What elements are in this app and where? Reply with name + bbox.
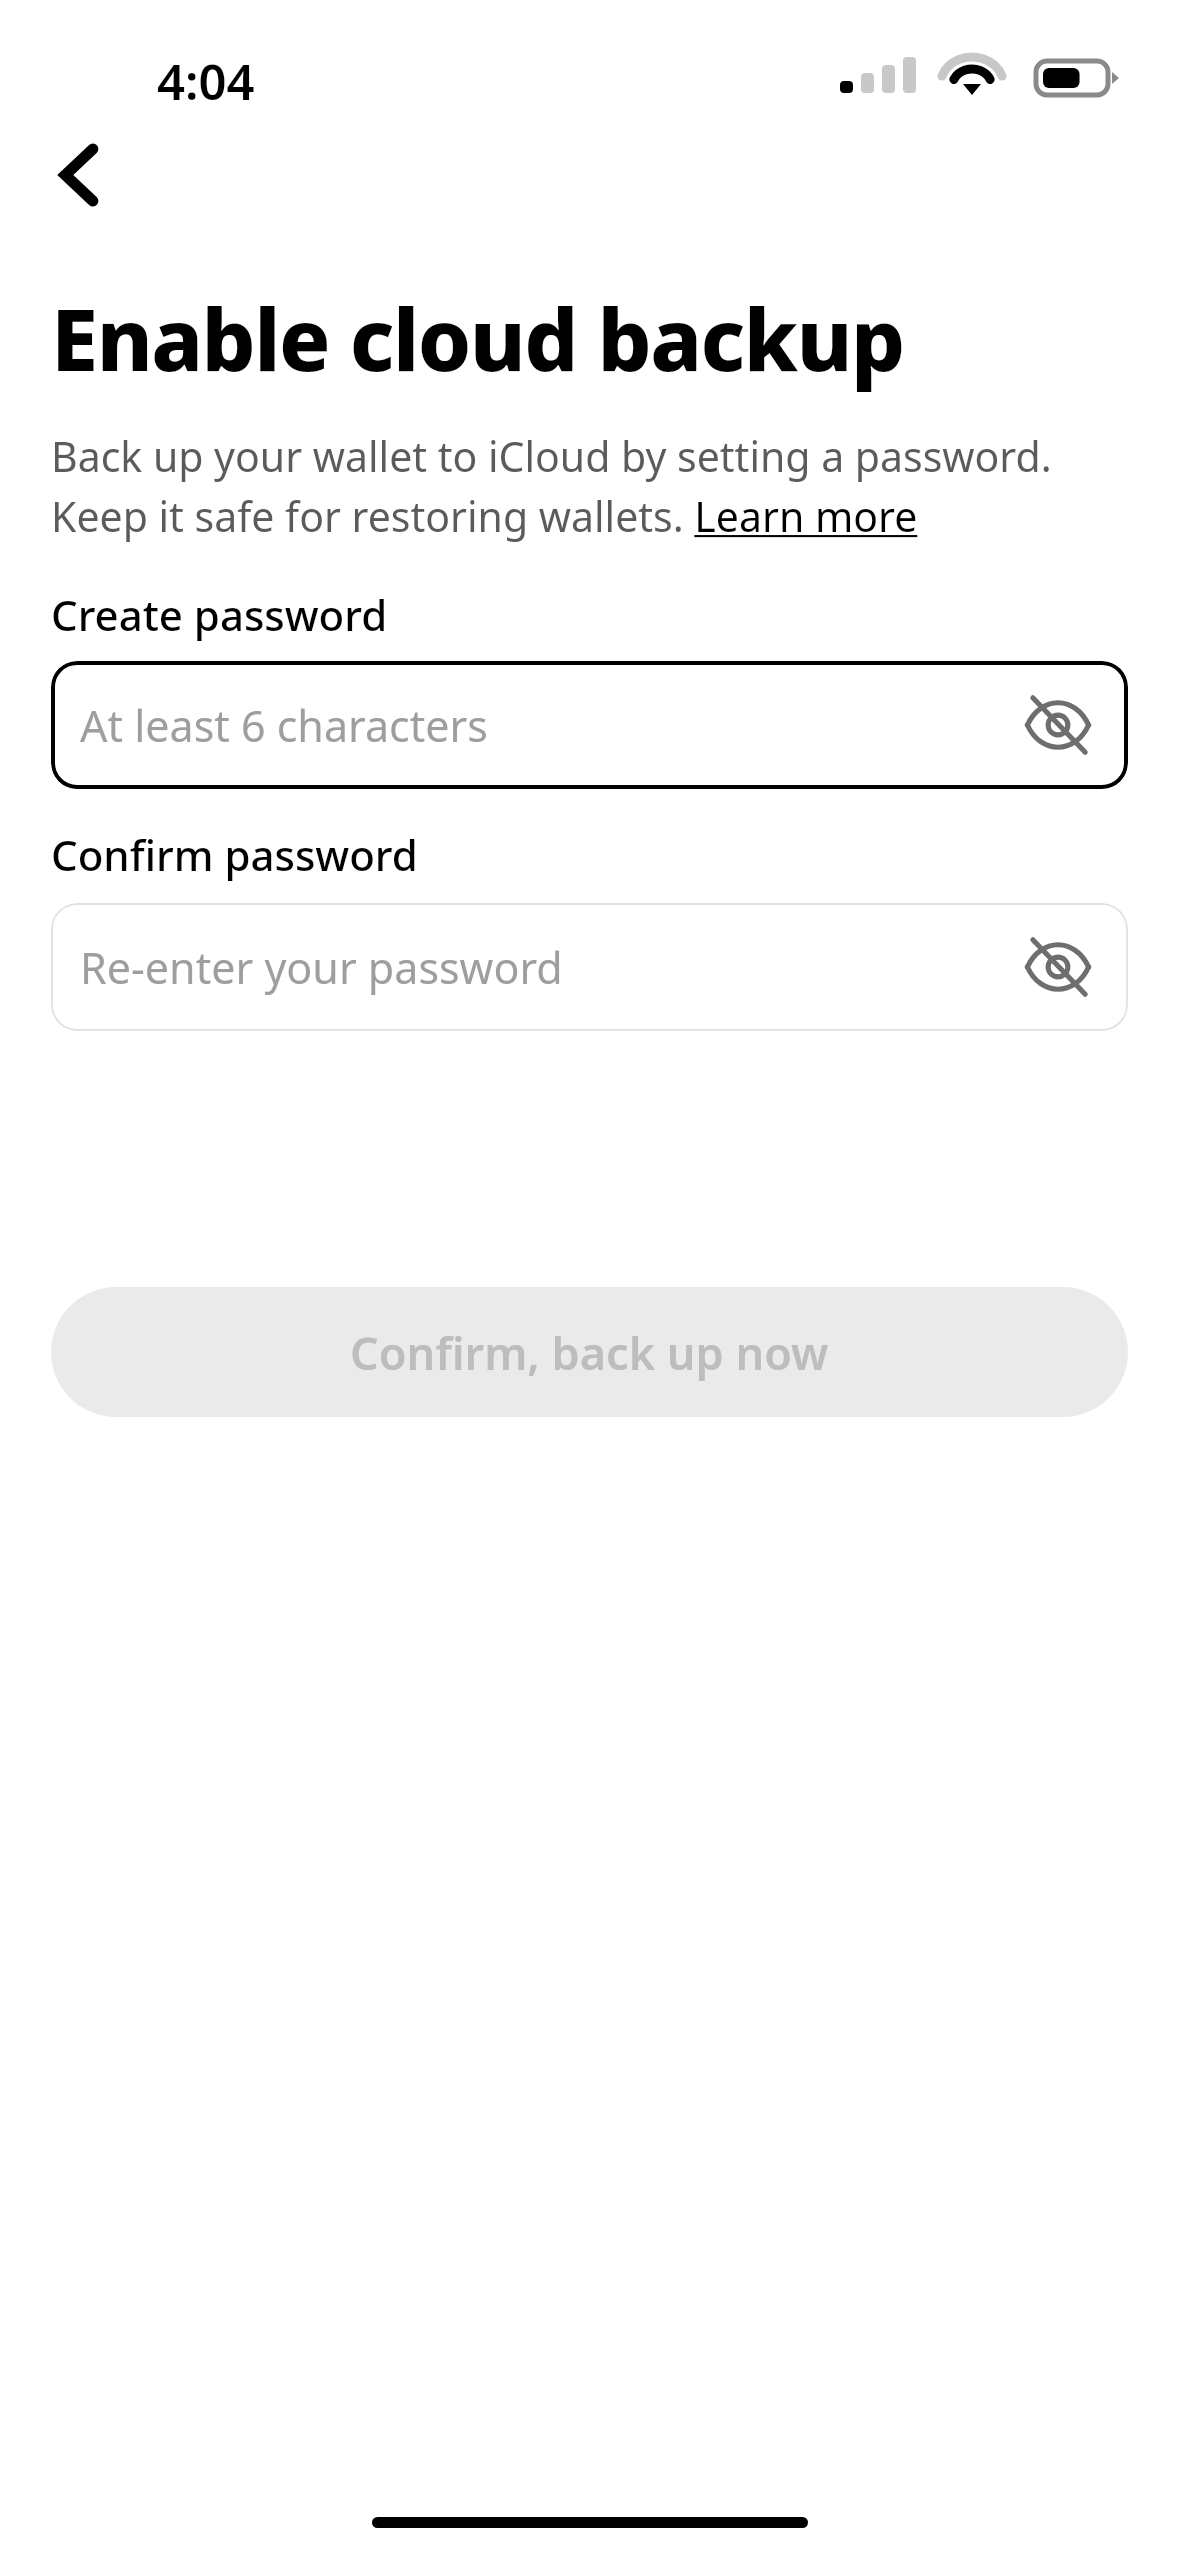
staticText: Create password xyxy=(51,586,388,643)
staticText: 4:04 xyxy=(157,48,255,115)
staticText: Confirm password xyxy=(51,826,418,883)
button[interactable]: Show password xyxy=(1010,677,1106,773)
staticText: Confirm, back up now xyxy=(350,1322,829,1383)
button[interactable]: Show password xyxy=(1010,919,1106,1015)
staticText: Re-enter your password xyxy=(80,938,563,997)
button[interactable]: Re-enter your password xyxy=(51,903,1128,1031)
button[interactable]: Back xyxy=(30,125,130,225)
button[interactable]: Confirm, back up now xyxy=(51,1287,1128,1417)
staticText: At least 6 characters xyxy=(80,696,488,755)
staticText: Back up your wallet to iCloud by setting… xyxy=(51,428,1134,544)
staticText: Enable cloud backup xyxy=(51,280,904,396)
button[interactable]: At least 6 characters xyxy=(51,661,1128,789)
